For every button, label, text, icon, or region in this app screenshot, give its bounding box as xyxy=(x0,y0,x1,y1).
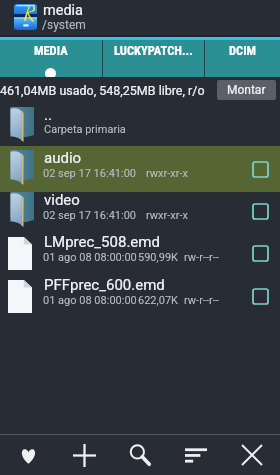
staticText: 01 ago 08 08:00:00 xyxy=(43,251,137,264)
button[interactable]: Search xyxy=(112,435,168,475)
staticText: LUCKYPATCH... xyxy=(114,43,193,58)
button[interactable]: Add xyxy=(56,435,112,475)
button[interactable]: DCIM xyxy=(205,40,280,77)
staticText: DCIM xyxy=(229,43,257,58)
button[interactable]: video xyxy=(0,190,280,232)
button[interactable]: Montar xyxy=(217,80,276,100)
staticText: rwxr-xr-x xyxy=(146,167,188,180)
staticText: rw-r--r-- xyxy=(184,294,219,307)
button[interactable]: Sort xyxy=(168,435,224,475)
staticText: Montar xyxy=(227,83,266,97)
staticText: PFFprec_600.emd xyxy=(44,276,165,294)
staticText: 02 sep 17 16:41:00 xyxy=(43,209,137,222)
staticText: rwxr-xr-x xyxy=(146,209,188,222)
button[interactable]: audio xyxy=(0,148,280,190)
button[interactable]: Select xyxy=(248,284,272,308)
staticText: MEDIA xyxy=(34,43,68,58)
button[interactable]: Select xyxy=(248,199,272,223)
staticText: LMprec_508.emd xyxy=(44,233,160,251)
staticText: rw-r--r-- xyxy=(184,251,219,264)
staticText: media xyxy=(43,2,83,19)
staticText: R xyxy=(24,2,35,25)
staticText: audio xyxy=(44,149,82,167)
button[interactable]: MEDIA xyxy=(0,40,102,77)
button[interactable]: Favourites xyxy=(0,435,56,475)
staticText: 01 ago 08 08:00:00 xyxy=(43,294,137,307)
staticText: Carpeta primaria xyxy=(44,123,126,136)
button[interactable]: Select xyxy=(248,157,272,181)
button[interactable]: PFFprec_600.emd xyxy=(0,275,280,317)
staticText: video xyxy=(44,191,80,209)
staticText: 590,99K xyxy=(138,251,178,264)
button[interactable]: .. xyxy=(0,105,280,147)
button[interactable]: R xyxy=(0,0,280,35)
staticText: .. xyxy=(44,106,52,124)
button[interactable]: LMprec_508.emd xyxy=(0,232,280,274)
staticText: 02 sep 17 16:41:00 xyxy=(43,167,137,180)
button[interactable]: Close xyxy=(224,435,280,475)
staticText: /system xyxy=(42,18,86,32)
button[interactable]: LUCKYPATCH... xyxy=(103,40,204,77)
staticText: 622,07K xyxy=(138,294,178,307)
staticText: 461,04MB usado, 548,25MB libre, r/o xyxy=(0,83,205,98)
button[interactable]: Select xyxy=(248,241,272,265)
